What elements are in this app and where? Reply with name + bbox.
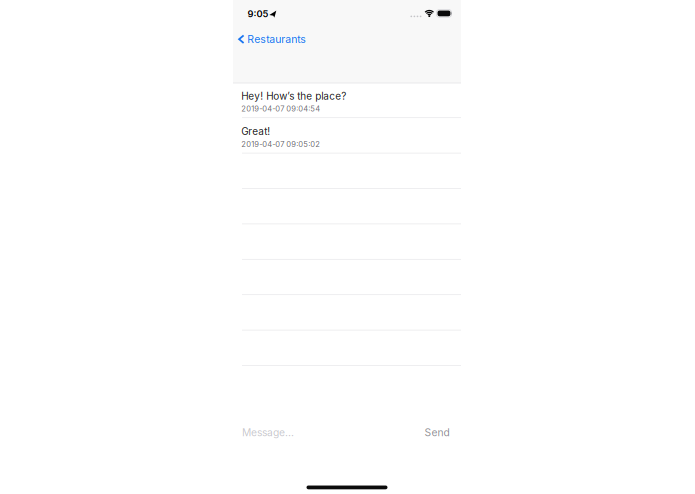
staticText: Message... xyxy=(242,426,294,439)
button[interactable]: Send xyxy=(409,423,449,443)
staticText: Restaurants xyxy=(247,33,306,45)
button[interactable]: Message xyxy=(242,423,362,443)
staticText: 2019-04-07 09:04:54 xyxy=(241,104,320,113)
staticText: 2019-04-07 09:05:02 xyxy=(241,140,320,149)
staticText: Send xyxy=(424,426,449,439)
staticText: Hey! How’s the place? xyxy=(241,90,346,102)
button[interactable]: Restaurants xyxy=(235,25,307,53)
staticText: 9:05 xyxy=(247,8,268,19)
staticText: Great! xyxy=(241,125,270,137)
